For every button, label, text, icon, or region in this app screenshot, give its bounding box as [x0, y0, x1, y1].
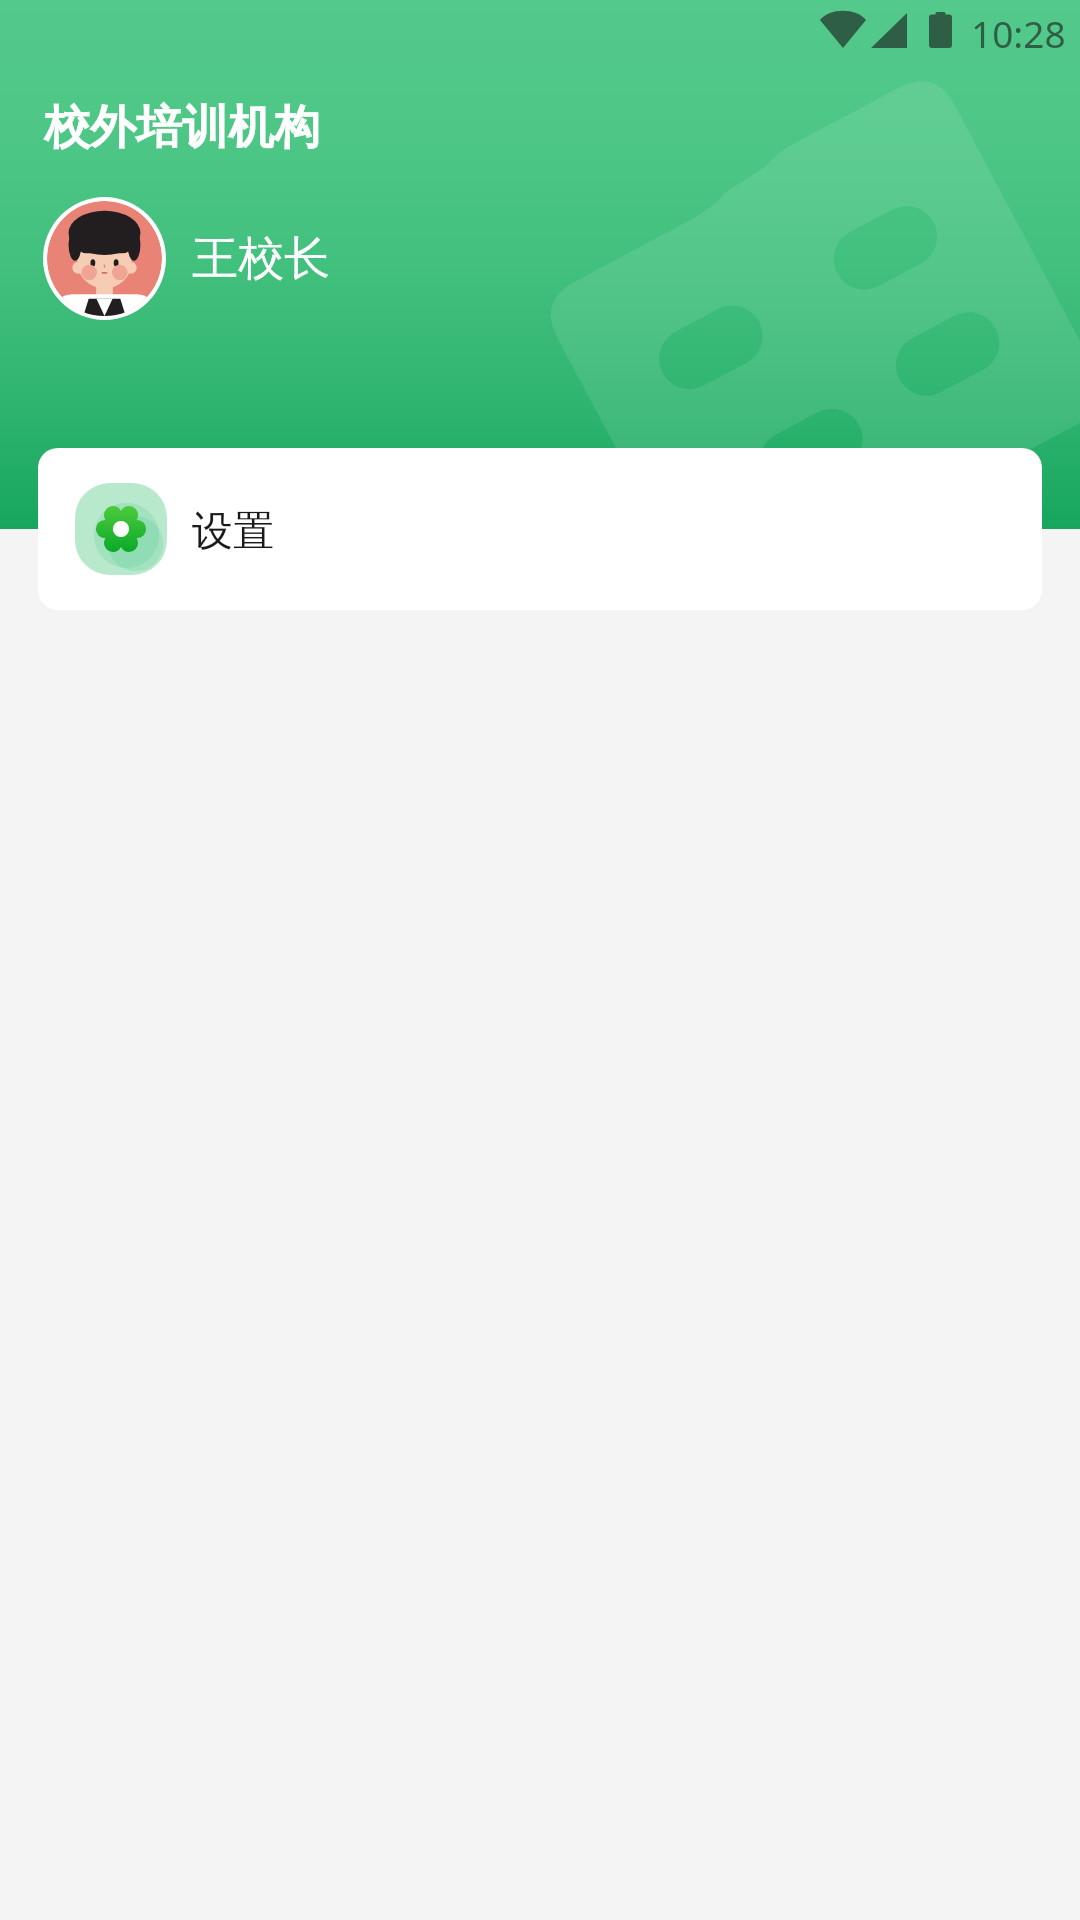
staticText: 校外培训机构 [44, 99, 320, 157]
button[interactable]: 王校长 [0, 173, 1080, 344]
staticText: 王校长 [192, 230, 330, 288]
staticText: 设置 [192, 506, 274, 558]
staticText: 10:28 [971, 8, 1066, 58]
button[interactable]: 设置 [38, 448, 1042, 610]
